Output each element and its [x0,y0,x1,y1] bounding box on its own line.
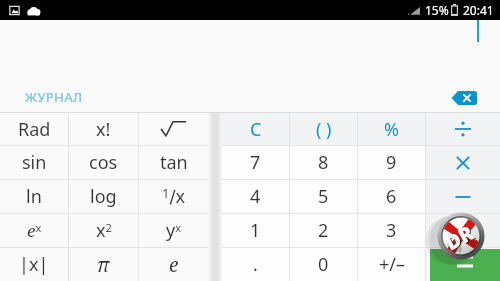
button[interactable]: 1∕x [139,180,208,213]
staticText: DR [440,219,479,256]
staticText: 0 [318,252,329,277]
button[interactable]: π [69,248,138,281]
staticText: |x| [19,252,49,277]
staticText: sin [22,150,47,175]
staticText: 2 [318,218,329,243]
staticText: ln [26,184,42,209]
staticText: C [250,117,262,142]
button[interactable] [426,248,500,281]
staticText: π [97,252,110,278]
button[interactable]: 0 [290,248,357,281]
button[interactable] [426,146,500,179]
button[interactable]: x! [69,113,138,145]
staticText: tan [160,150,188,175]
button[interactable]: % [358,113,425,145]
button[interactable]: ЖУРНАЛ [25,88,83,106]
staticText: % [384,117,399,142]
staticText: 1 [250,218,261,243]
button[interactable] [426,113,500,145]
staticText: 8 [318,150,329,175]
button[interactable]: 8 [290,146,357,179]
button[interactable]: 9 [358,146,425,179]
button[interactable]: 2 [290,214,357,247]
button[interactable]: sin [0,146,68,179]
button[interactable]: 4 [222,180,289,213]
staticText: DR [442,219,480,257]
staticText: 6 [386,184,397,209]
button[interactable]: 5 [290,180,357,213]
button[interactable]: x2 [69,214,138,247]
staticText: 1∕x [162,184,186,209]
button[interactable] [139,113,208,145]
button[interactable] [426,214,500,247]
button[interactable]: 7 [222,146,289,179]
staticText: 20:41 [463,2,494,18]
button[interactable]: +/– [358,248,425,281]
staticText: cos [89,150,118,175]
button[interactable]: cos [69,146,138,179]
button[interactable]: 1 [222,214,289,247]
button[interactable]: tan [139,146,208,179]
button[interactable]: Rad [0,113,68,145]
staticText: 3 [386,218,397,243]
button[interactable]: e [139,248,208,281]
staticText: 5 [318,184,329,209]
staticText: 15% [425,2,449,18]
button[interactable]: . [222,248,289,281]
staticText: x2 [96,218,112,243]
staticText: 7 [250,150,261,175]
staticText: . [253,252,258,277]
staticText: 4 [250,184,261,209]
staticText: ( ) [316,117,332,142]
button[interactable]: 6 [358,180,425,213]
button[interactable]: Backspace [450,91,477,105]
staticText: log [90,184,117,209]
staticText: e [169,252,179,278]
button[interactable] [426,180,500,213]
button[interactable]: yx [139,214,208,247]
staticText: x! [96,117,111,142]
button[interactable]: log [69,180,138,213]
button[interactable]: C [222,113,289,145]
button[interactable]: 3 [358,214,425,247]
button[interactable]: ( ) [290,113,357,145]
button[interactable]: ex [0,214,68,247]
button[interactable]: ln [0,180,68,213]
staticText: yx [166,218,181,243]
staticText: +/– [379,252,405,277]
staticText: 9 [386,150,397,175]
button[interactable]: |x| [0,248,68,281]
staticText: Rad [18,117,51,142]
staticText: ex [27,219,42,242]
